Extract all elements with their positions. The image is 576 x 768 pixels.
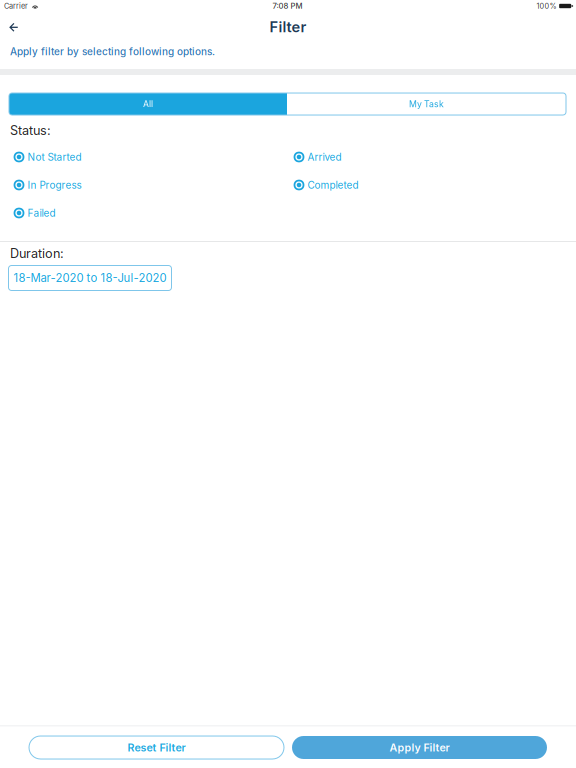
button[interactable]: 18-Mar-2020 to 18-Jul-2020 xyxy=(8,265,171,290)
staticText: Status: xyxy=(10,123,51,138)
button[interactable]: In Progress xyxy=(13,178,173,192)
staticText: Filter xyxy=(269,18,306,36)
staticText: Apply filter by selecting following opti… xyxy=(10,45,215,58)
button[interactable]: Not Started xyxy=(13,150,173,164)
staticText: Apply Filter xyxy=(389,741,449,754)
button[interactable]: Completed xyxy=(293,178,453,192)
staticText: Arrived xyxy=(307,151,341,163)
staticText: Not Started xyxy=(27,151,81,163)
button[interactable]: My Task xyxy=(287,93,566,115)
staticText: Failed xyxy=(27,207,55,219)
staticText: In Progress xyxy=(27,179,81,191)
button[interactable]: All xyxy=(9,93,287,115)
staticText: Duration: xyxy=(10,246,64,261)
staticText: All xyxy=(143,99,153,109)
staticText: 18-Mar-2020 to 18-Jul-2020 xyxy=(13,271,166,285)
staticText: 100% xyxy=(536,2,556,10)
button[interactable]: Failed xyxy=(13,206,173,220)
button[interactable]: Reset Filter xyxy=(29,736,284,759)
staticText: My Task xyxy=(409,99,444,109)
staticText: Carrier xyxy=(4,2,28,10)
button[interactable]: Back xyxy=(1,15,27,39)
button[interactable]: Arrived xyxy=(293,150,453,164)
button[interactable]: Apply Filter xyxy=(292,736,547,759)
staticText: 7:08 PM xyxy=(272,1,302,11)
staticText: Reset Filter xyxy=(127,741,185,754)
staticText: Completed xyxy=(307,179,358,191)
